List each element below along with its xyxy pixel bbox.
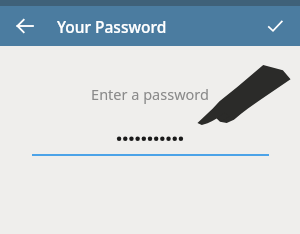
staticText: Enter a password bbox=[91, 84, 209, 104]
button[interactable]: Confirm bbox=[261, 12, 289, 40]
button[interactable]: Back bbox=[11, 12, 39, 40]
button[interactable] bbox=[0, 130, 300, 146]
staticText: Your Password bbox=[57, 16, 167, 37]
